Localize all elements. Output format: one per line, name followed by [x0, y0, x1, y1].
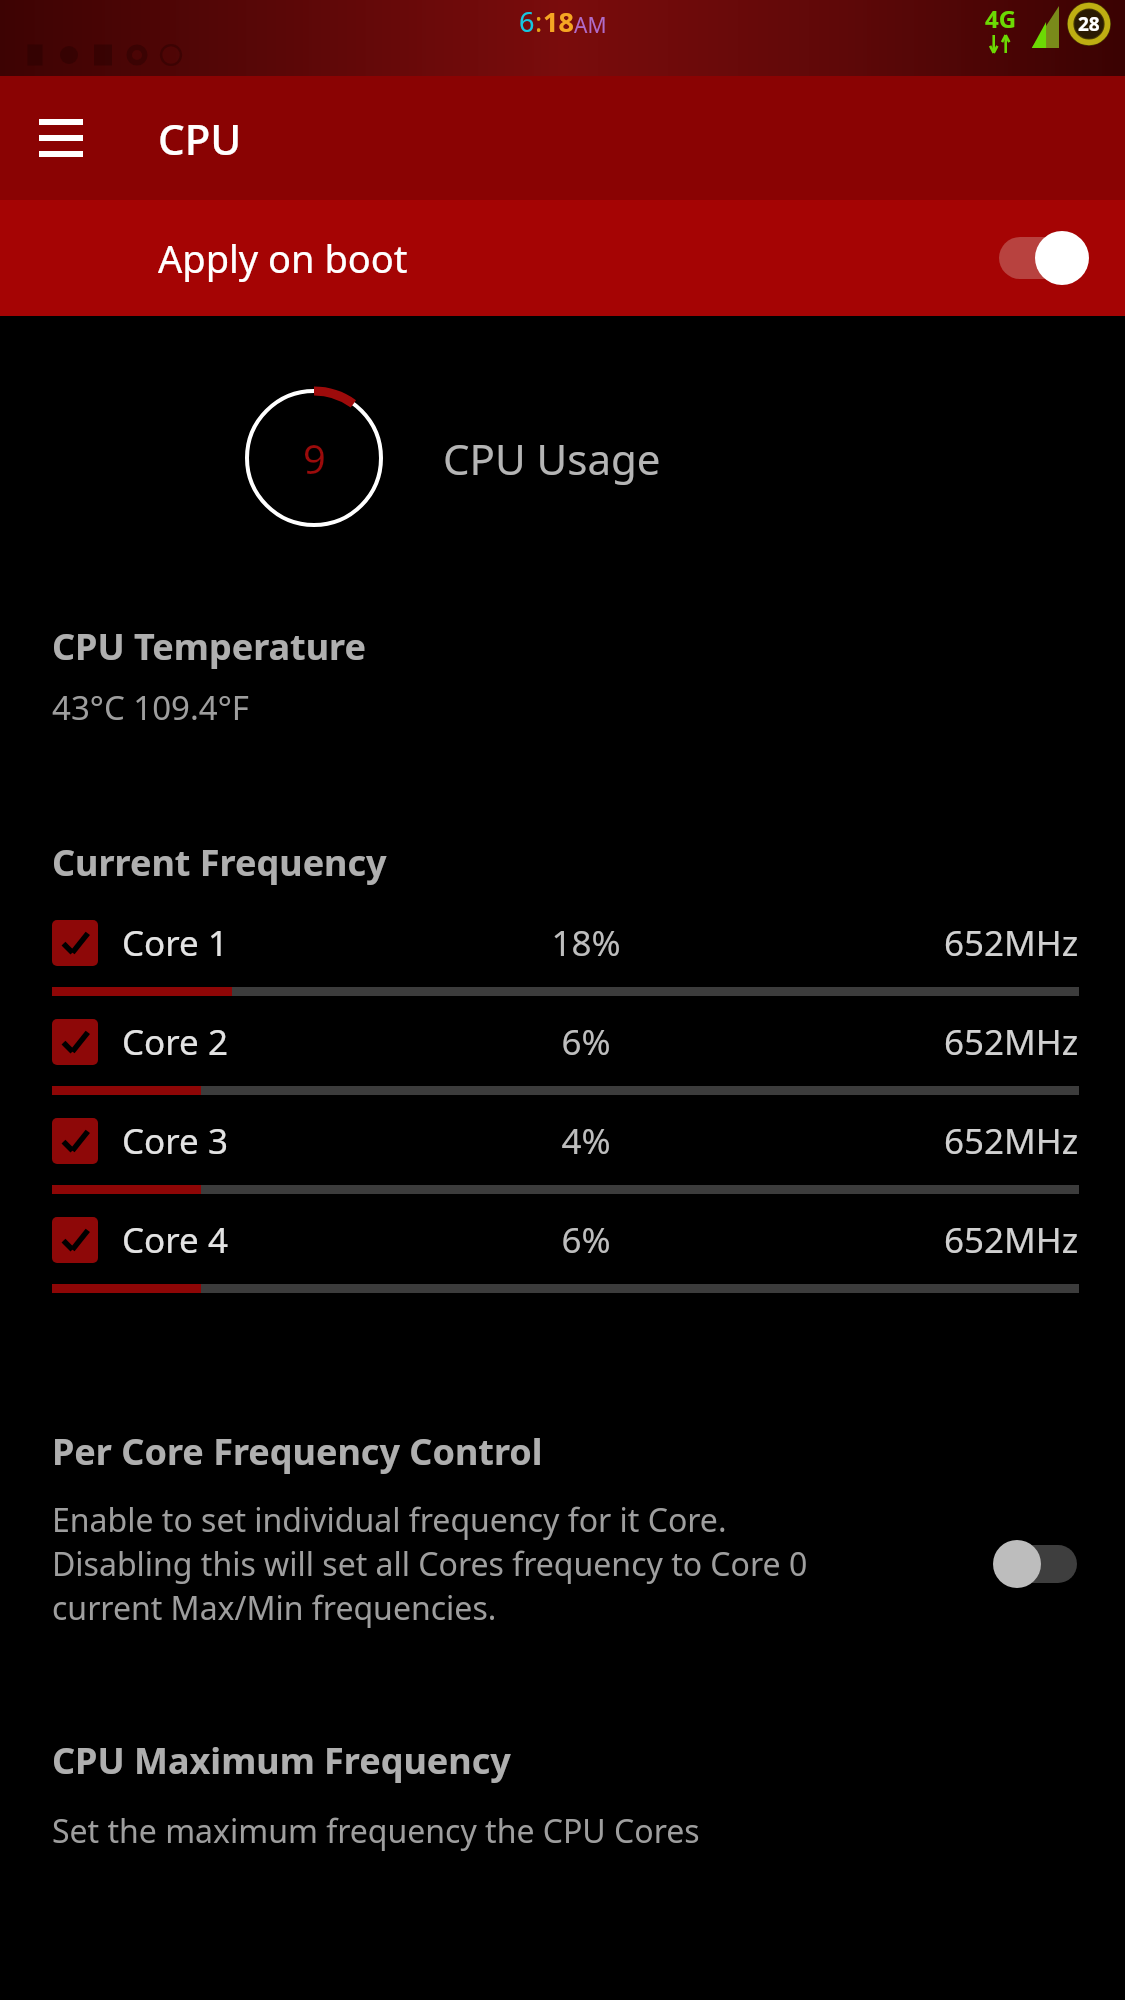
staticText: 9	[303, 431, 326, 485]
staticText: current Max/Min frequencies.	[52, 1586, 497, 1630]
staticText: CPU Maximum Frequency	[52, 1736, 511, 1785]
staticText: 18%	[486, 919, 686, 967]
staticText: CPU Temperature	[52, 622, 366, 671]
staticText: Set the maximum frequency the CPU Cores	[52, 1809, 700, 1853]
staticText: 6%	[486, 1216, 686, 1264]
staticText: Apply on boot	[158, 232, 408, 284]
button[interactable]: Core 4 enabled	[52, 1217, 98, 1263]
staticText: Enable to set individual frequency for i…	[52, 1498, 727, 1542]
staticText: 43°C 109.4°F	[52, 685, 249, 730]
staticText: 4%	[486, 1117, 686, 1165]
staticText: Per Core Frequency Control	[52, 1427, 543, 1476]
staticText: 18	[543, 3, 574, 40]
staticText: 652MHz	[944, 1117, 1079, 1165]
staticText: CPU	[158, 110, 242, 167]
staticText: Disabling this will set all Cores freque…	[52, 1542, 808, 1586]
staticText: CPU Usage	[443, 430, 661, 487]
staticText: Core 1	[122, 919, 228, 967]
staticText: 6	[519, 3, 535, 40]
staticText: 4G	[985, 2, 1017, 35]
staticText: Core 3	[122, 1117, 228, 1165]
button[interactable]: Core 4 enabled	[0, 1216, 1125, 1315]
staticText: AM	[574, 11, 607, 40]
staticText: 6%	[486, 1018, 686, 1066]
button[interactable]: Core 2 enabled	[0, 1018, 1125, 1117]
staticText: 652MHz	[944, 919, 1079, 967]
staticText: 28	[1078, 11, 1100, 37]
button[interactable]: Apply on boot	[0, 200, 1125, 316]
button[interactable]: Core 3 enabled	[52, 1118, 98, 1164]
staticText: 652MHz	[944, 1216, 1079, 1264]
button[interactable]: Core 3 enabled	[0, 1117, 1125, 1216]
button[interactable]: Enable to set individual frequency for i…	[0, 1498, 1125, 1630]
button[interactable]: Core 1 enabled	[52, 920, 98, 966]
staticText: :	[535, 3, 543, 40]
button[interactable]: Core 1 enabled	[0, 919, 1125, 1018]
button[interactable]: Core 2 enabled	[52, 1019, 98, 1065]
staticText: 652MHz	[944, 1018, 1079, 1066]
staticText: Core 4	[122, 1216, 228, 1264]
button[interactable]: Open navigation menu	[30, 107, 92, 169]
staticText: Core 2	[122, 1018, 228, 1066]
staticText: Current Frequency	[52, 838, 387, 887]
